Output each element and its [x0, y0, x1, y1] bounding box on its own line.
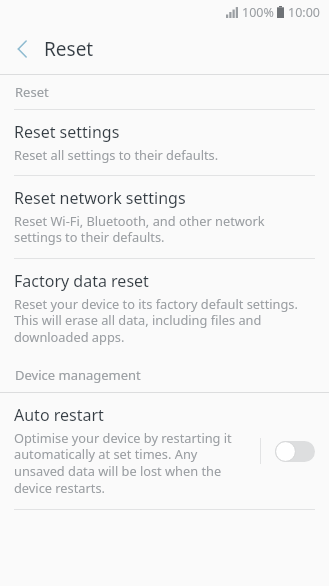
staticText: Reset all settings to their defaults.: [14, 146, 219, 163]
staticText: Reset Wi-Fi, Bluetooth, and other networ…: [14, 212, 303, 246]
button[interactable]: Back: [0, 24, 44, 74]
staticText: 100%: [242, 4, 274, 21]
button[interactable]: Reset network settings: [0, 176, 329, 258]
staticText: Auto restart: [14, 404, 104, 426]
staticText: Reset: [15, 83, 49, 101]
button[interactable]: Reset settings: [0, 110, 329, 175]
staticText: Optimise your device by restarting it au…: [14, 429, 250, 497]
button[interactable]: Auto restart: [0, 393, 329, 509]
staticText: Reset your device to its factory default…: [14, 295, 303, 346]
button[interactable]: Auto restart toggle: [261, 425, 329, 477]
staticText: 10:00: [288, 4, 320, 21]
button[interactable]: Factory data reset: [0, 259, 329, 358]
staticText: Device management: [15, 366, 141, 384]
staticText: Reset settings: [14, 121, 120, 143]
staticText: Reset: [44, 36, 94, 62]
staticText: Factory data reset: [14, 270, 149, 292]
staticText: Reset network settings: [14, 187, 186, 209]
